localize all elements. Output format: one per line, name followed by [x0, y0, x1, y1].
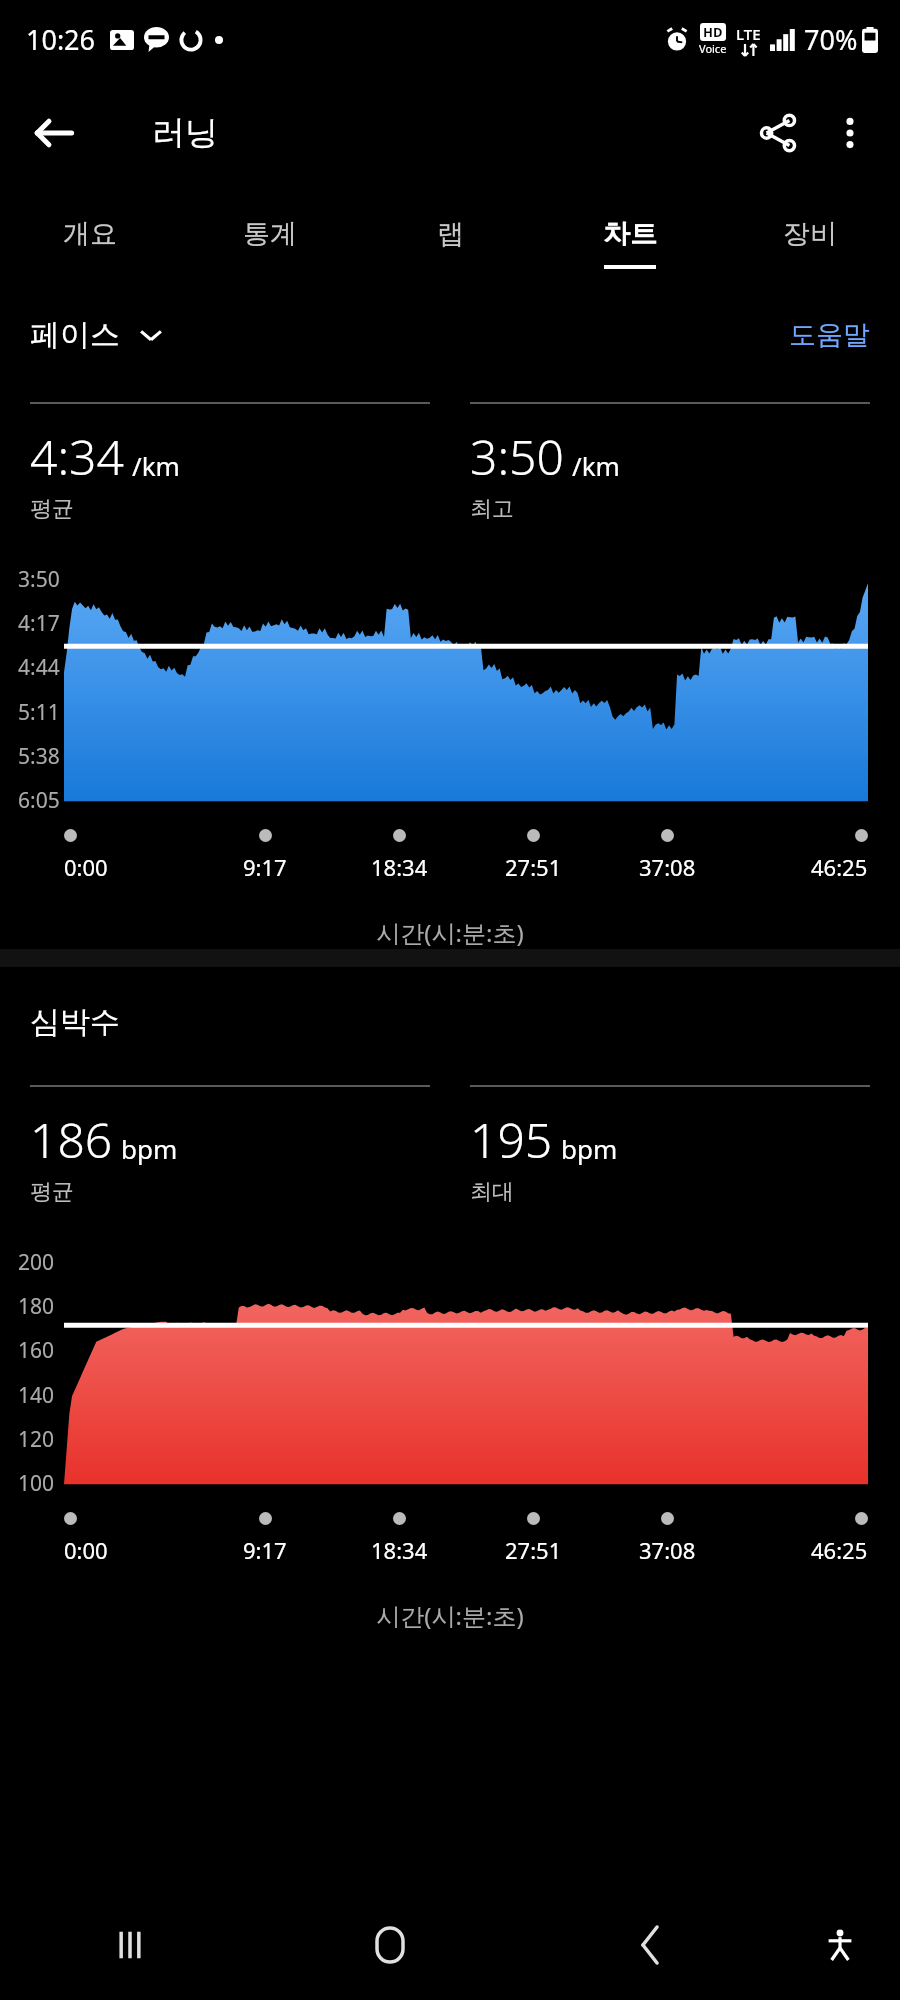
staticText: 18:34: [371, 852, 428, 882]
staticText: 최대: [470, 1178, 514, 1206]
staticText: 9:17: [243, 852, 287, 882]
staticText: 4:17: [18, 609, 60, 638]
button[interactable]: More options: [814, 97, 886, 169]
staticText: bpm: [121, 1131, 178, 1166]
staticText: 120: [18, 1425, 55, 1454]
button[interactable]: Home: [260, 1890, 520, 2000]
staticText: 통계: [243, 217, 297, 251]
staticText: 70%: [804, 21, 858, 58]
staticText: 도움말: [789, 318, 870, 352]
staticText: 최고: [470, 495, 514, 523]
staticText: 시간(시:분:초): [0, 1599, 900, 1632]
button[interactable]: 랩: [360, 188, 540, 298]
button[interactable]: Accessibility: [780, 1890, 900, 2000]
staticText: 200: [18, 1248, 55, 1277]
staticText: 46:25: [811, 852, 868, 882]
staticText: 랩: [437, 217, 464, 251]
staticText: /km: [572, 448, 620, 483]
staticText: 160: [18, 1336, 55, 1365]
button[interactable]: Back: [18, 97, 90, 169]
staticText: 3:50: [470, 424, 564, 489]
staticText: 심박수: [30, 1003, 120, 1041]
button[interactable]: 페이스: [30, 316, 164, 354]
staticText: 195: [470, 1107, 553, 1172]
staticText: 180: [18, 1292, 55, 1321]
staticText: /km: [132, 448, 180, 483]
button[interactable]: Recent apps: [0, 1890, 260, 2000]
staticText: 140: [18, 1381, 55, 1410]
button[interactable]: Back: [520, 1890, 780, 2000]
staticText: 6:05: [18, 786, 60, 815]
staticText: 0:00: [64, 1535, 108, 1565]
staticText: 37:08: [639, 852, 696, 882]
staticText: 장비: [783, 217, 837, 251]
staticText: 10:26: [26, 21, 96, 58]
staticText: bpm: [561, 1131, 618, 1166]
staticText: 4:44: [18, 653, 60, 682]
button[interactable]: 차트: [540, 188, 720, 298]
staticText: 27:51: [505, 1535, 562, 1565]
staticText: 9:17: [243, 1535, 287, 1565]
staticText: LTE: [736, 24, 761, 44]
staticText: 평균: [30, 495, 74, 523]
staticText: 5:38: [18, 742, 60, 771]
staticText: 5:11: [18, 698, 60, 727]
staticText: 186: [30, 1107, 113, 1172]
staticText: 4:34: [30, 424, 124, 489]
staticText: 3:50: [18, 565, 60, 594]
staticText: 러닝: [152, 112, 218, 154]
button[interactable]: 통계: [180, 188, 360, 298]
button[interactable]: Share: [742, 97, 814, 169]
staticText: Voice: [699, 41, 727, 56]
button[interactable]: 도움말: [789, 318, 870, 352]
staticText: 0:00: [64, 852, 108, 882]
staticText: 개요: [63, 217, 117, 251]
staticText: 100: [18, 1469, 55, 1498]
staticText: 46:25: [811, 1535, 868, 1565]
button[interactable]: 개요: [0, 188, 180, 298]
staticText: 시간(시:분:초): [0, 916, 900, 949]
staticText: 평균: [30, 1178, 74, 1206]
staticText: HD: [703, 23, 723, 41]
staticText: 37:08: [639, 1535, 696, 1565]
staticText: 차트: [603, 217, 657, 251]
staticText: 페이스: [30, 316, 120, 354]
staticText: 18:34: [371, 1535, 428, 1565]
button[interactable]: 장비: [720, 188, 900, 298]
staticText: 27:51: [505, 852, 562, 882]
